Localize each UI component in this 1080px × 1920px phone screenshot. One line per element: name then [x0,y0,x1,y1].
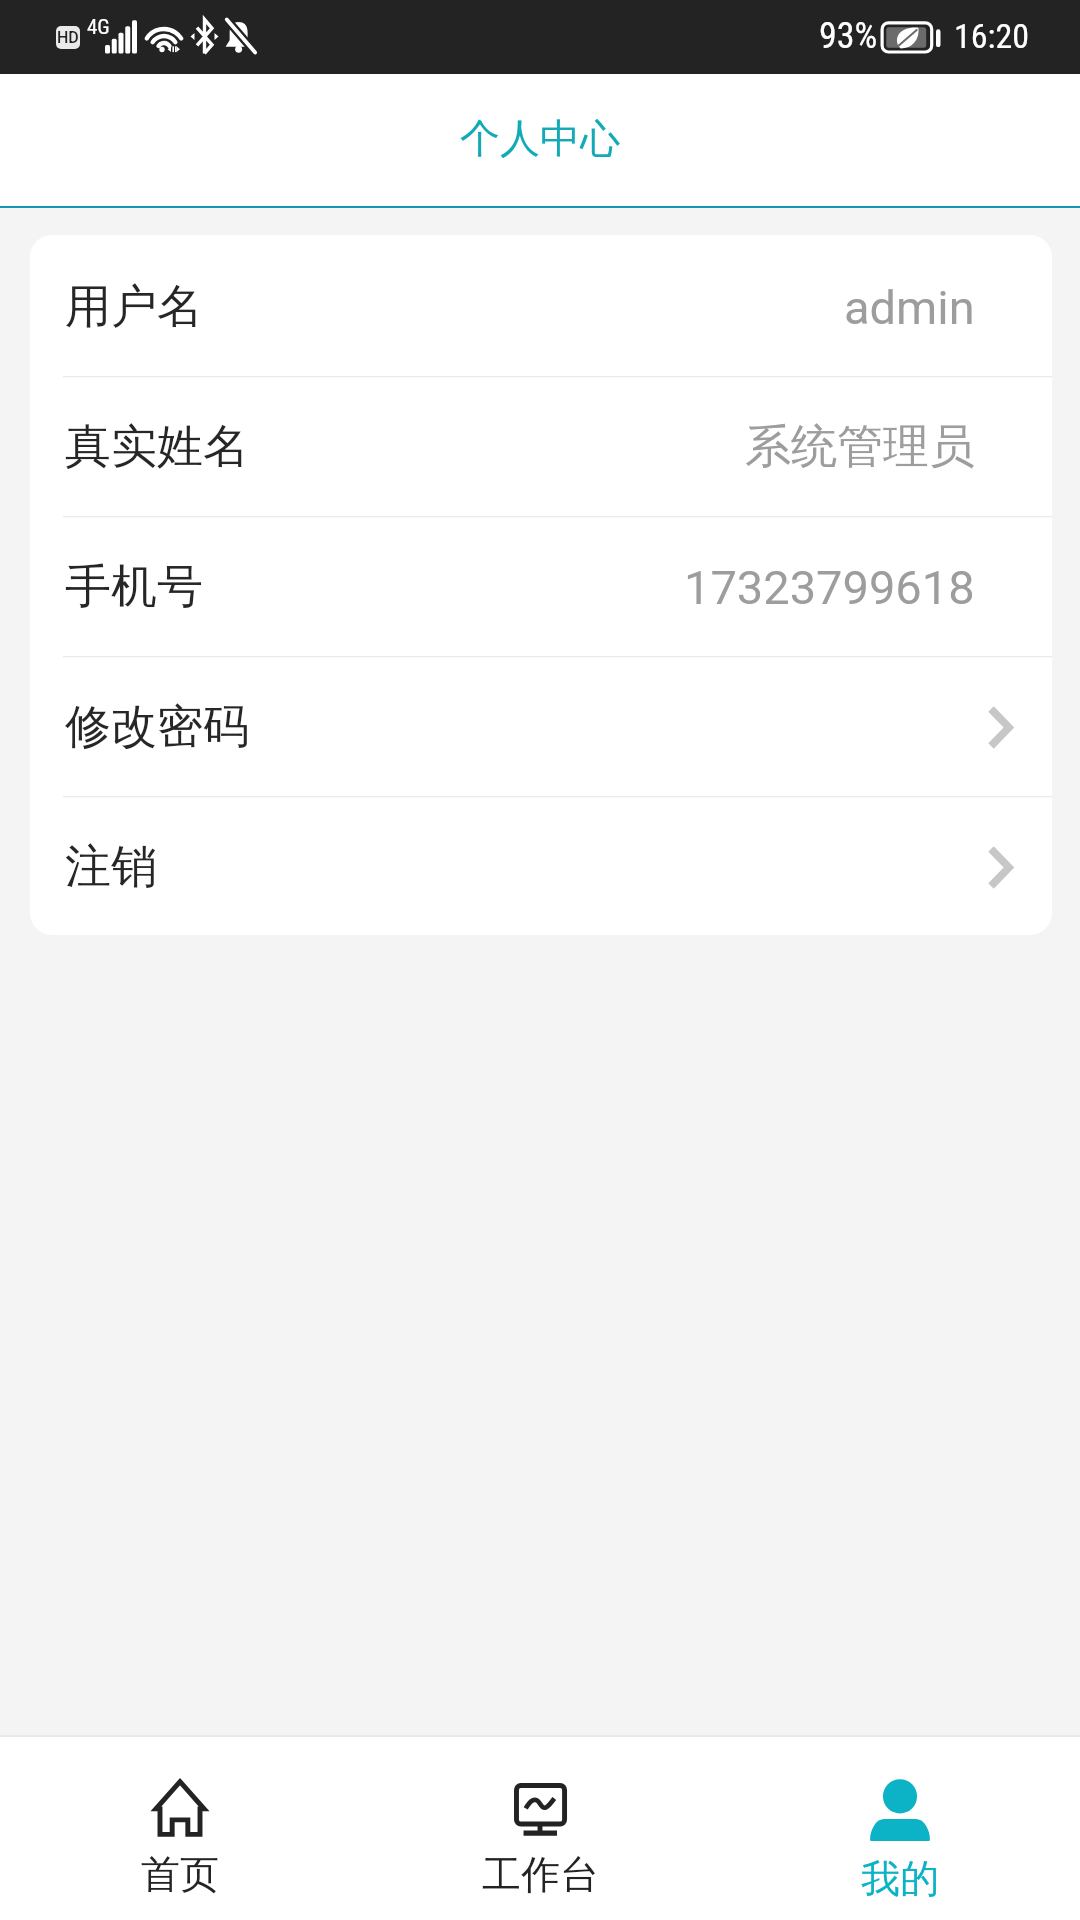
staticText: 17323799618 [684,560,975,615]
button[interactable]: 首页 [0,1737,360,1920]
staticText: 93% [819,15,878,57]
staticText: 工作台 [482,1850,599,1899]
staticText: admin [844,280,975,335]
button[interactable]: 修改密码 [30,655,1052,795]
staticText: 手机号 [65,558,203,616]
staticText: 个人中心 [460,113,620,163]
button[interactable]: 手机号 [30,515,1052,655]
other: 工作台 [511,1779,569,1837]
staticText: 16:20 [954,16,1030,56]
staticText: HD [57,28,79,47]
staticText: 系统管理员 [745,418,975,476]
other: 首页 [151,1779,209,1837]
staticText: 首页 [141,1850,219,1899]
staticText: 4G [87,15,110,40]
button[interactable]: 注销 [30,795,1052,935]
staticText: 修改密码 [65,698,249,756]
staticText: 真实姓名 [65,418,249,476]
staticText: 注销 [65,838,157,896]
other: 我的 [869,1779,931,1841]
button[interactable]: 我的 [720,1737,1080,1920]
button[interactable]: 用户名 [30,235,1052,375]
button[interactable]: 真实姓名 [30,375,1052,515]
staticText: 我的 [861,1854,939,1903]
button[interactable]: 工作台 [360,1737,720,1920]
staticText: 用户名 [65,278,203,336]
